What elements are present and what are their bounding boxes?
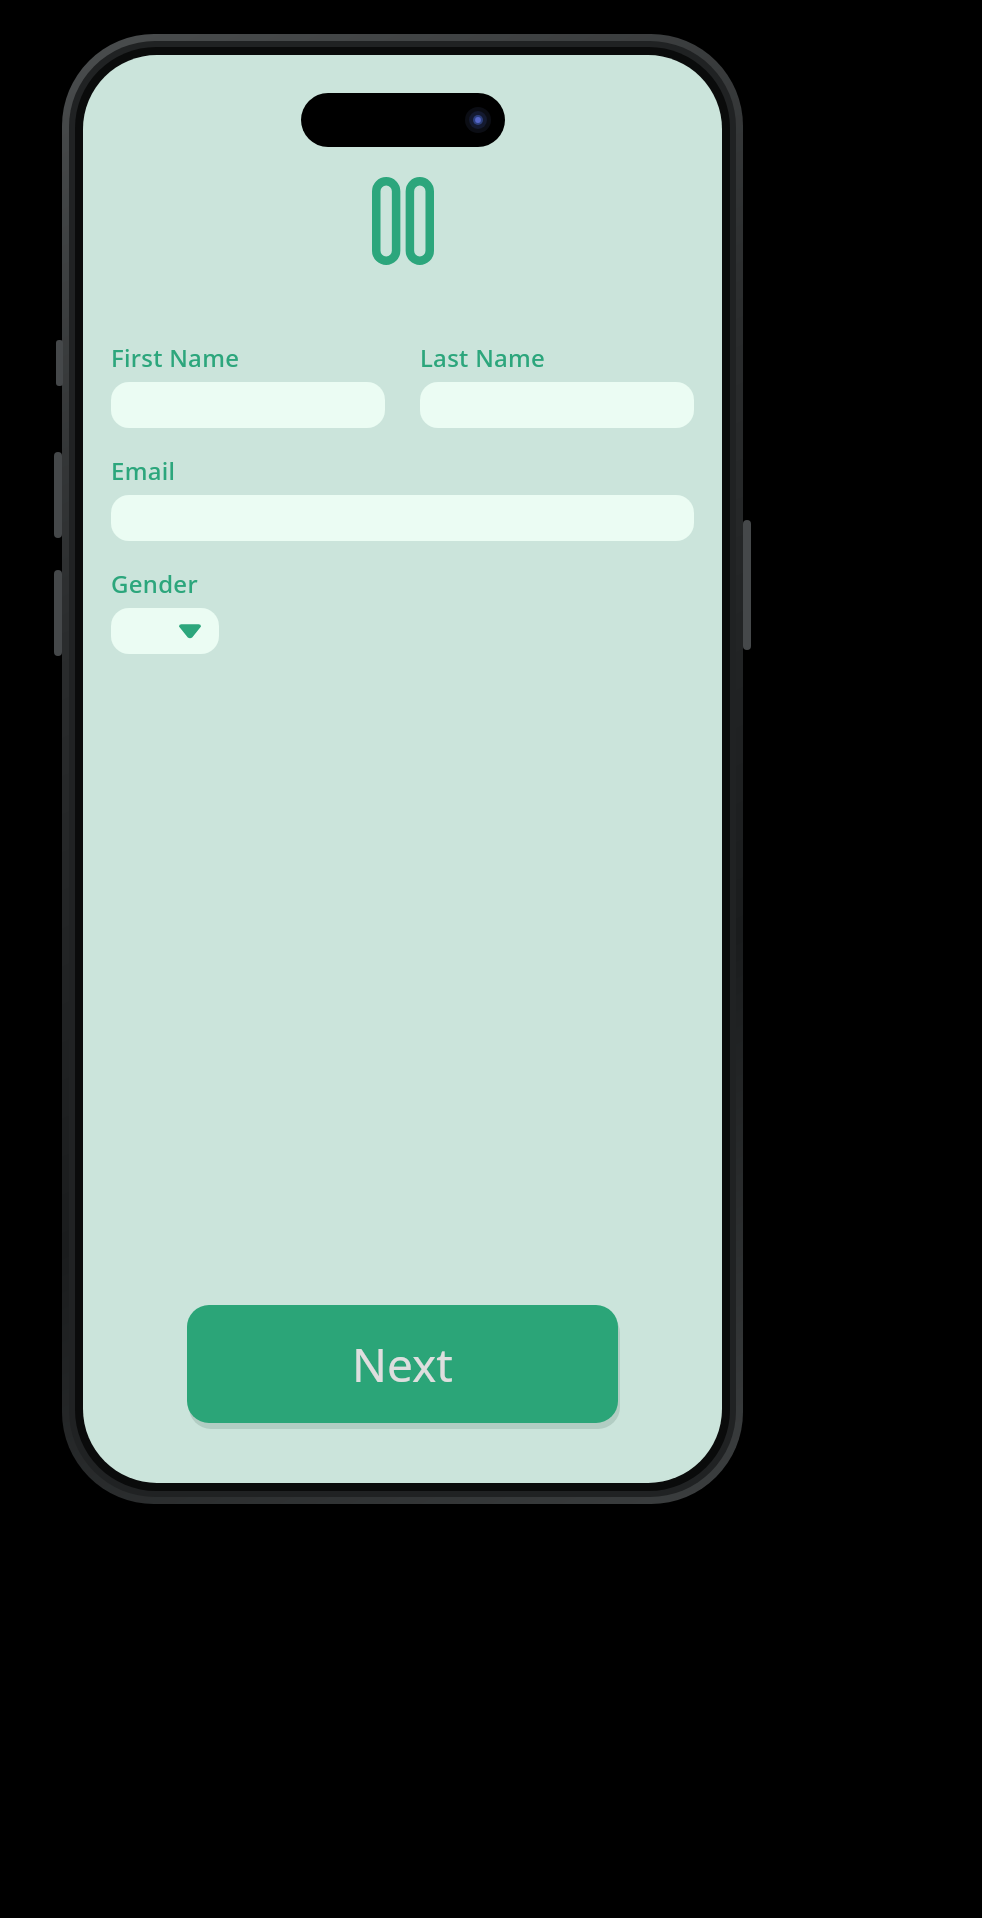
button[interactable]: Next [187,1305,618,1423]
button[interactable] [111,382,385,428]
staticText: Gender [111,567,198,600]
button[interactable]: Select gender [111,608,219,654]
button[interactable] [420,382,694,428]
staticText: Last Name [420,341,546,374]
staticText: First Name [111,341,240,374]
button[interactable] [111,495,694,541]
staticText: Next [352,1333,453,1396]
staticText: Email [111,454,176,487]
